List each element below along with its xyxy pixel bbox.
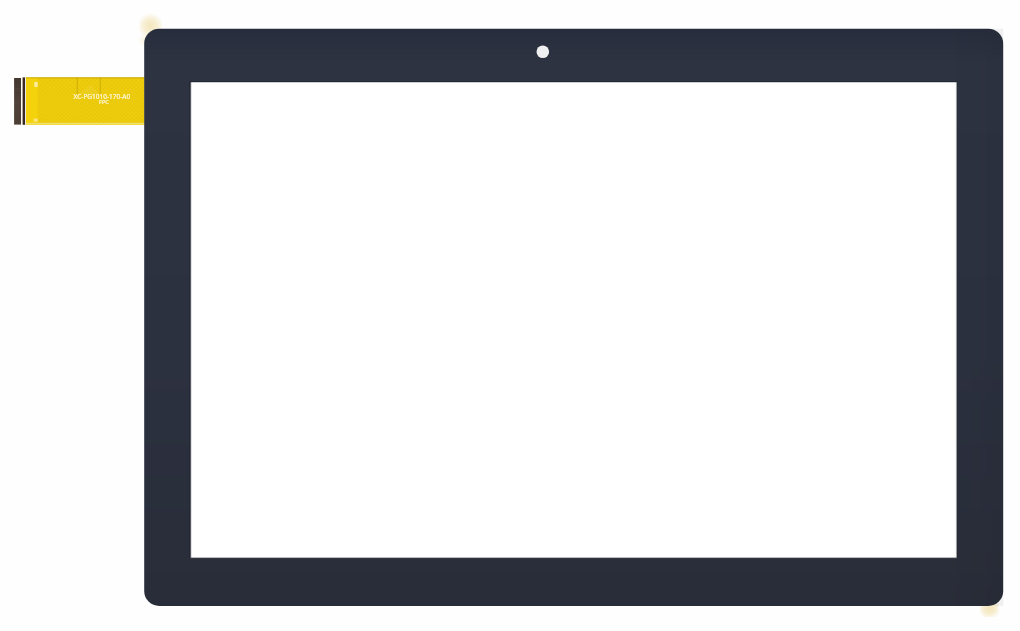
button[interactable]: XC-PG1010-170-A0 tablet touch screen dig…	[0, 0, 1020, 631]
